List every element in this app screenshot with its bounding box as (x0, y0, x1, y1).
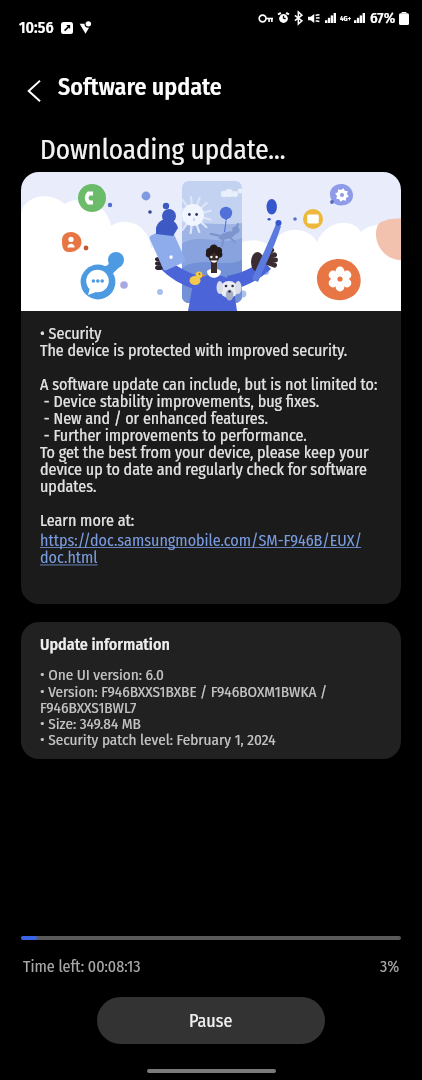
staticText: Downloading update... (40, 134, 286, 166)
staticText: https://doc.samsungmobile.com/SM-F946B/E… (40, 531, 387, 568)
staticText: Time left: 00:08:13 (23, 957, 141, 976)
staticText: 10:56 (19, 18, 54, 37)
staticText: 4G+ (340, 14, 352, 22)
button[interactable]: Pause (97, 997, 325, 1044)
staticText: • One UI version: 6.0 • Version: F946BXX… (40, 666, 387, 749)
staticText: 67% (370, 9, 396, 27)
staticText: Software update (58, 73, 222, 102)
button[interactable]: Back (0, 58, 58, 116)
staticText: 3% (380, 957, 400, 976)
staticText: Update information (40, 635, 170, 654)
staticText: • Security The device is protected with … (40, 324, 387, 531)
staticText: Pause (189, 1010, 233, 1032)
